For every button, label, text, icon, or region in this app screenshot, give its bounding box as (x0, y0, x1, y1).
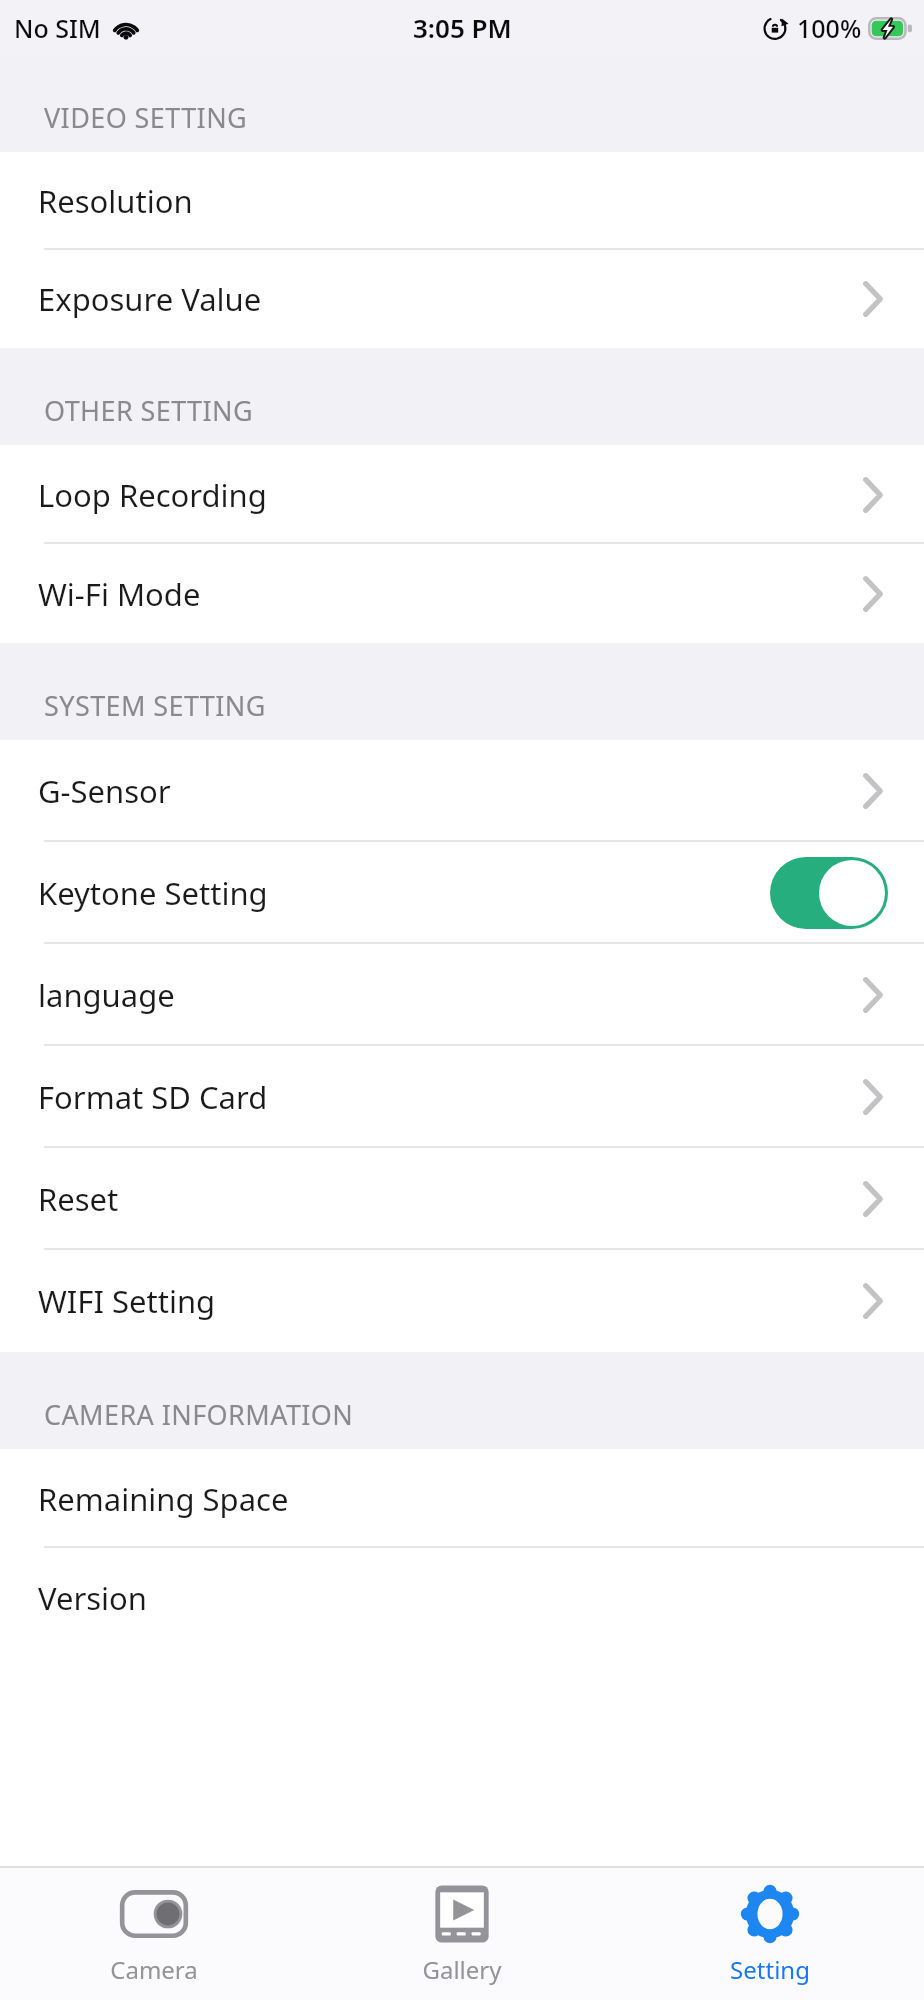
staticText: Gallery (422, 1953, 502, 1986)
staticText: 3:05 PM (413, 10, 512, 45)
staticText: Reset (38, 1178, 119, 1220)
button[interactable]: Keytone Setting (0, 842, 924, 944)
button[interactable]: Keytone Setting toggle, on (770, 857, 888, 929)
staticText: Remaining Space (38, 1478, 289, 1520)
button[interactable]: G-Sensor (0, 740, 924, 842)
staticText: Keytone Setting (38, 872, 268, 914)
staticText: VIDEO SETTING (44, 99, 248, 136)
staticText: Setting (730, 1953, 810, 1986)
button[interactable]: Gallery (308, 1868, 616, 2000)
staticText: SYSTEM SETTING (44, 687, 266, 724)
staticText: G-Sensor (38, 770, 171, 812)
staticText: No SIM (14, 11, 101, 45)
button[interactable]: Resolution (0, 152, 924, 250)
staticText: Version (38, 1577, 148, 1619)
staticText: CAMERA INFORMATION (44, 1396, 354, 1433)
button[interactable]: Setting (616, 1868, 924, 2000)
staticText: Format SD Card (38, 1076, 268, 1118)
button[interactable]: Loop Recording (0, 445, 924, 544)
staticText: OTHER SETTING (44, 392, 254, 429)
staticText: Exposure Value (38, 278, 262, 320)
button[interactable]: Version (0, 1548, 924, 1647)
staticText: language (38, 974, 175, 1016)
button[interactable]: Exposure Value (0, 250, 924, 348)
button[interactable]: Remaining Space (0, 1449, 924, 1548)
staticText: Resolution (38, 180, 193, 222)
button[interactable]: WIFI Setting (0, 1250, 924, 1352)
button[interactable]: Reset (0, 1148, 924, 1250)
staticText: Wi-Fi Mode (38, 573, 201, 615)
staticText: 100% (797, 11, 862, 45)
button[interactable]: Wi-Fi Mode (0, 544, 924, 643)
button[interactable]: Camera (0, 1868, 308, 2000)
staticText: Loop Recording (38, 474, 267, 516)
button[interactable]: Format SD Card (0, 1046, 924, 1148)
staticText: WIFI Setting (38, 1280, 216, 1322)
staticText: Camera (110, 1953, 198, 1986)
button[interactable]: language (0, 944, 924, 1046)
